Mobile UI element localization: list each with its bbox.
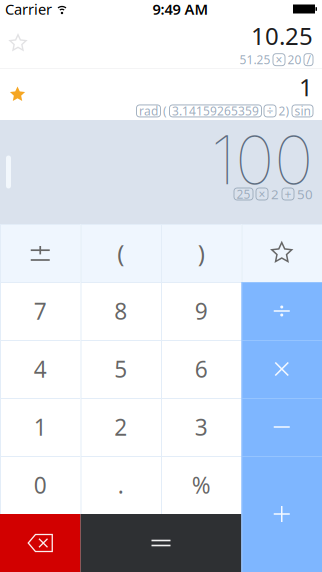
staticText: 0 [34,470,47,500]
staticText: % [192,470,211,500]
staticText: 10.25 [251,20,313,52]
button[interactable]: Add [241,456,322,572]
staticText: 8 [114,296,127,326]
button[interactable]: 2 [80,398,161,456]
staticText: ( [163,103,167,119]
staticText: Carrier [5,0,52,19]
staticText: 6 [195,354,208,384]
button[interactable]: Delete [0,514,80,572]
button[interactable]: % [161,456,241,514]
staticText: / [306,52,310,68]
staticText: sin [294,103,310,119]
button[interactable]: Favorite [241,224,322,282]
button[interactable]: 4 [0,340,80,398]
staticText: 9:49 AM [152,0,208,19]
staticText: 9 [195,296,208,326]
staticText: 7 [34,296,47,326]
staticText: 100 [211,120,313,200]
staticText: 1 [299,71,313,103]
button[interactable]: ) [161,224,241,282]
button[interactable]: Equals [80,514,241,572]
button[interactable]: Divide [241,282,322,340]
staticText: ) [198,237,205,269]
button[interactable]: 7 [0,282,80,340]
button[interactable]: 10.25 [0,18,322,68]
button[interactable]: ( [80,224,161,282]
button[interactable]: . [80,456,161,514]
staticText: 2) [278,103,289,119]
button[interactable]: Subtract [241,398,322,456]
button[interactable]: 1 [0,398,80,456]
staticText: 2 [271,185,279,203]
staticText: 3 [195,412,208,442]
staticText: ( [117,237,124,269]
staticText: 5 [114,354,127,384]
staticText: ÷ [266,103,273,119]
button[interactable] [0,224,80,282]
staticText: 20 [287,52,301,68]
staticText: × [258,186,265,202]
staticText: 4 [34,354,47,384]
staticText: 25 [236,186,250,202]
button[interactable]: 0 [0,456,80,514]
staticText: 1 [34,412,47,442]
staticText: 50 [297,185,313,203]
button[interactable]: 5 [80,340,161,398]
staticText: 51.25 [239,52,270,68]
button[interactable]: 3 [161,398,241,456]
staticText: rad [139,103,158,119]
button[interactable]: Multiply [241,340,322,398]
button[interactable]: 9 [161,282,241,340]
staticText: + [284,186,291,202]
button[interactable]: 8 [80,282,161,340]
button[interactable]: 6 [161,340,241,398]
button[interactable]: 1 [0,69,322,120]
staticText: . [118,470,124,500]
staticText: × [275,52,282,68]
staticText: 2 [114,412,127,442]
staticText: 3.14159265359 [172,103,259,119]
